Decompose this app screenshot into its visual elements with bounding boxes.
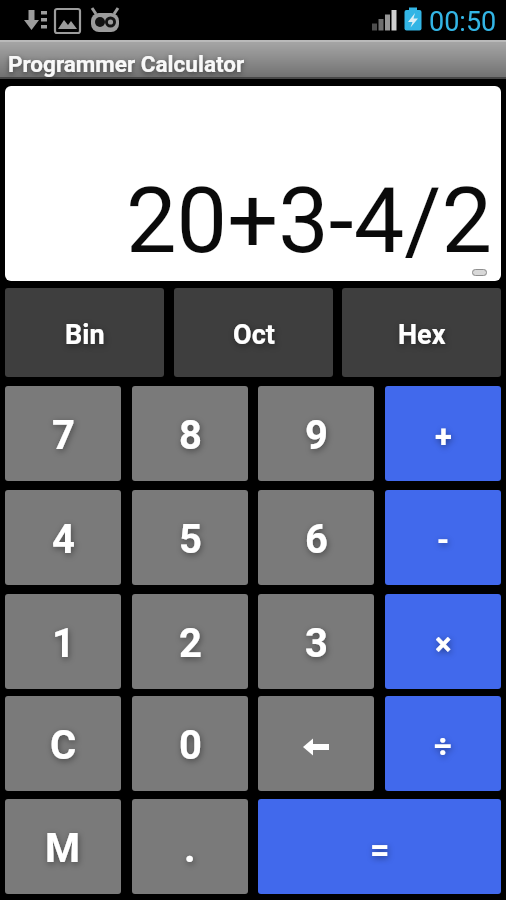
button[interactable]: Bin	[5, 288, 164, 377]
button[interactable]: 9	[258, 386, 374, 481]
staticText: 6	[305, 516, 328, 563]
button[interactable]: Oct	[174, 288, 333, 377]
button[interactable]: 20+3-4/2	[5, 86, 501, 281]
button[interactable]: C	[5, 696, 121, 791]
staticText: 4	[52, 516, 75, 563]
button[interactable]: M	[5, 799, 121, 894]
staticText: Programmer Calculator	[8, 51, 245, 77]
button[interactable]: 3	[258, 594, 374, 689]
staticText: ×	[435, 626, 452, 662]
staticText: 9	[305, 412, 328, 459]
staticText: .	[184, 825, 196, 872]
button[interactable]: 5	[132, 490, 248, 585]
staticText: 00:50	[429, 6, 497, 38]
button[interactable]: 2	[132, 594, 248, 689]
staticText: Oct	[233, 319, 275, 351]
button[interactable]: Hex	[342, 288, 501, 377]
staticText: 7	[52, 412, 75, 459]
staticText: 0	[179, 722, 202, 769]
staticText: C	[50, 722, 77, 769]
staticText: 20+3-4/2	[126, 169, 492, 274]
staticText: 3	[305, 620, 328, 667]
staticText: 8	[179, 412, 202, 459]
button[interactable]: 4	[5, 490, 121, 585]
staticText: -	[437, 522, 450, 558]
staticText: =	[370, 829, 390, 869]
button[interactable]: ÷	[385, 696, 501, 791]
staticText: 5	[179, 516, 202, 563]
button[interactable]: 8	[132, 386, 248, 481]
button[interactable]: -	[385, 490, 501, 585]
button[interactable]: .	[132, 799, 248, 894]
button[interactable]: 0	[132, 696, 248, 791]
staticText: M	[45, 825, 81, 872]
button[interactable]: 7	[5, 386, 121, 481]
staticText: +	[435, 418, 452, 454]
staticText: Hex	[398, 319, 446, 351]
staticText: Bin	[65, 319, 105, 351]
button[interactable]: +	[385, 386, 501, 481]
staticText: ÷	[434, 728, 452, 764]
button[interactable]	[258, 696, 374, 791]
button[interactable]: 1	[5, 594, 121, 689]
button[interactable]: 6	[258, 490, 374, 585]
button[interactable]: =	[258, 799, 501, 894]
staticText: 2	[179, 620, 202, 667]
button[interactable]: ×	[385, 594, 501, 689]
staticText: 1	[52, 620, 75, 667]
